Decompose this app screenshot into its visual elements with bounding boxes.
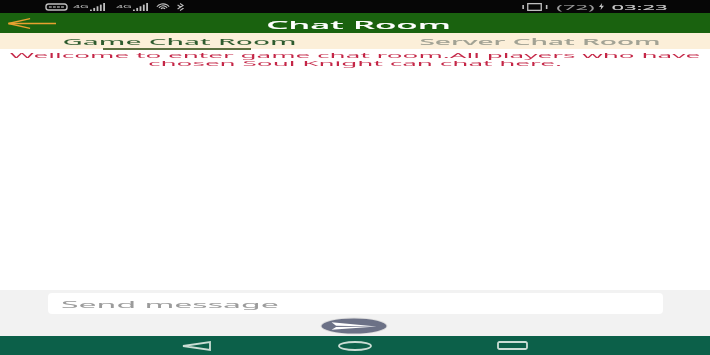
staticText: Wellcome to enter game chat room.All pla…: [5, 50, 705, 68]
button[interactable]: Home: [325, 336, 385, 355]
button[interactable]: Recent apps: [482, 336, 542, 355]
button[interactable]: Back: [166, 336, 226, 355]
staticText: 03:23: [611, 2, 668, 12]
staticText: Server Chat Room: [419, 37, 661, 48]
button[interactable]: Send message: [48, 293, 663, 314]
staticText: Send message: [61, 298, 279, 310]
staticText: (72): [556, 2, 595, 12]
button[interactable]: Server Chat Room: [355, 33, 710, 49]
button[interactable]: Send: [320, 317, 388, 335]
button[interactable]: Game Chat Room: [0, 33, 355, 49]
staticText: Game Chat Room: [62, 37, 297, 48]
staticText: Chat Room: [266, 17, 451, 32]
button[interactable]: Back: [8, 13, 56, 33]
staticText: 4G: [73, 4, 89, 9]
staticText: 4G: [116, 4, 132, 9]
